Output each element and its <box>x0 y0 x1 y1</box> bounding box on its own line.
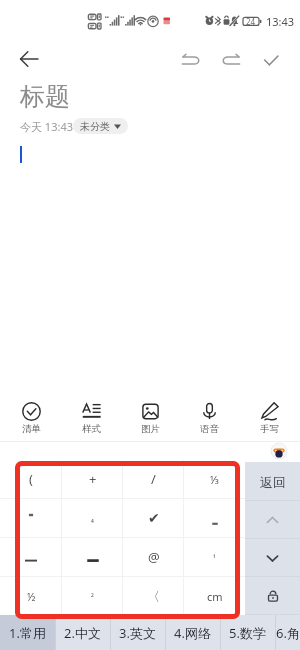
staticText: 样式 <box>82 423 101 435</box>
staticText: 4.网络 <box>174 624 211 642</box>
staticText: 今天 13:43 <box>20 119 73 134</box>
button[interactable] <box>62 538 123 576</box>
button[interactable]: ² <box>62 577 123 615</box>
button[interactable]: Lock <box>245 577 300 615</box>
staticText: 标题 <box>20 81 70 112</box>
button[interactable]: 2.中文 <box>55 615 110 650</box>
button[interactable]: 手写 <box>241 394 297 436</box>
staticText: 5.数学 <box>229 624 266 642</box>
button[interactable] <box>0 538 62 576</box>
button[interactable]: @ <box>123 538 184 576</box>
button[interactable]: 4.网络 <box>165 615 220 650</box>
button[interactable]: / <box>123 460 184 498</box>
button[interactable]: 1.常用 <box>0 615 55 650</box>
staticText: ₄ <box>91 513 94 524</box>
button[interactable]: 语音 <box>181 394 237 436</box>
button[interactable]: 5.数学 <box>220 615 275 650</box>
button[interactable]: 清单 <box>3 394 59 436</box>
button[interactable]: ₄ <box>62 499 123 537</box>
staticText: ½ <box>27 589 36 604</box>
button[interactable] <box>184 499 245 537</box>
button[interactable]: Done <box>252 41 289 78</box>
staticText: @ <box>148 548 160 566</box>
staticText: 13:43 <box>266 14 295 29</box>
staticText: 手写 <box>260 423 279 435</box>
staticText: 语音 <box>200 423 219 435</box>
button[interactable]: ⅓ <box>184 460 245 498</box>
button[interactable]: 未分类 <box>73 118 128 134</box>
button[interactable] <box>0 499 62 537</box>
button[interactable]: Input method <box>271 443 287 459</box>
button[interactable]: ¹ <box>184 538 245 576</box>
button[interactable]: ½ <box>0 577 62 615</box>
button[interactable]: Redo <box>212 41 249 78</box>
staticText: 图片 <box>141 423 160 435</box>
staticText: 未分类 <box>80 120 110 133</box>
button[interactable]: 样式 <box>63 394 119 436</box>
staticText: ² <box>91 591 94 602</box>
button[interactable]: 6.角 <box>275 615 300 650</box>
button[interactable]: Back <box>11 41 47 77</box>
button[interactable]: + <box>62 460 123 498</box>
staticText: ⅓ <box>210 472 220 487</box>
staticText: 2.中文 <box>64 624 101 642</box>
staticText: / <box>151 470 156 488</box>
staticText: 1.常用 <box>9 624 46 642</box>
button[interactable]: 图片 <box>122 394 178 436</box>
button[interactable]: Page up <box>245 501 300 539</box>
button[interactable]: Undo <box>172 41 209 78</box>
button[interactable]: Page down <box>245 539 300 577</box>
staticText: + <box>89 470 97 488</box>
staticText: cm <box>207 589 223 604</box>
button[interactable]: ✔ <box>123 499 184 537</box>
staticText: 返回 <box>260 474 286 490</box>
button[interactable]: ( <box>0 460 62 498</box>
button[interactable]: 返回 <box>245 462 300 501</box>
staticText: 24 <box>246 16 256 27</box>
staticText: 〈 <box>147 588 160 604</box>
staticText: ✔ <box>148 510 160 526</box>
staticText: 6.角 <box>276 624 300 642</box>
button[interactable]: cm <box>184 577 245 615</box>
staticText: 3.英文 <box>119 624 156 642</box>
staticText: ¹ <box>213 552 216 563</box>
staticText: ( <box>29 470 33 488</box>
staticText: 清单 <box>22 423 41 435</box>
button[interactable]: 〈 <box>123 577 184 615</box>
button[interactable]: 3.英文 <box>110 615 165 650</box>
